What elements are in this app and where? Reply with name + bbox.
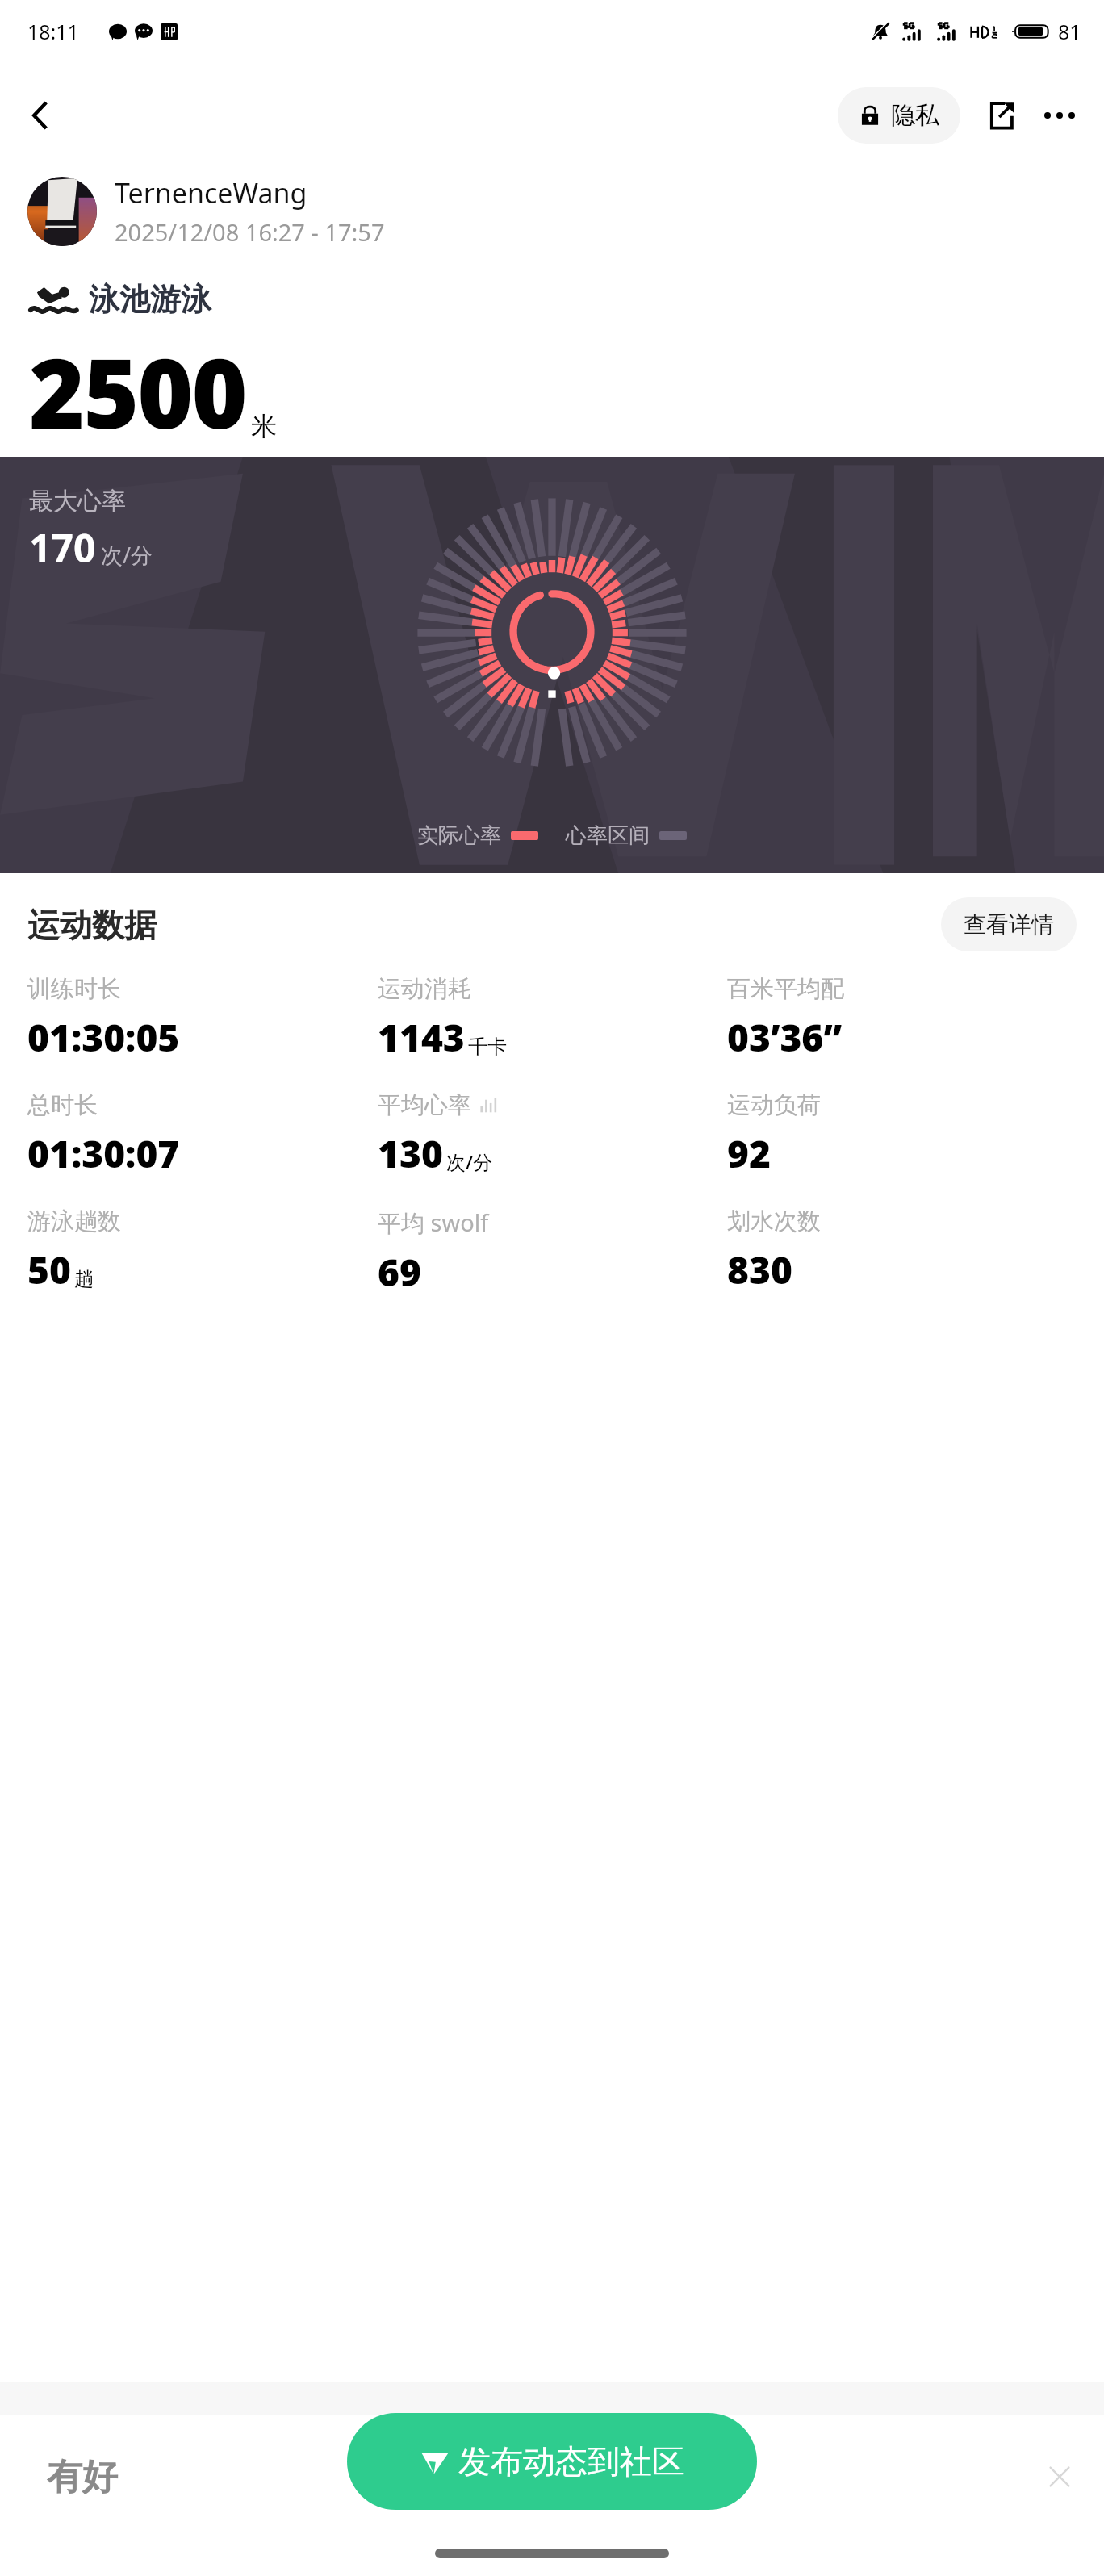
staticText: 2025/12/08 16:27 - 17:57	[115, 216, 385, 248]
staticText: 2500	[29, 327, 246, 457]
staticText: 趟	[74, 1267, 94, 1291]
staticText: 92	[727, 1128, 771, 1179]
staticText: 130	[378, 1128, 443, 1179]
staticText: 运动数据	[27, 905, 157, 945]
staticText: 81	[1058, 18, 1081, 45]
staticText: 50	[27, 1244, 71, 1295]
button[interactable]: 发布动态到社区	[347, 2413, 757, 2510]
staticText: 69	[378, 1247, 421, 1298]
staticText: 划水次数	[727, 1206, 821, 1236]
staticText: 最大心率	[29, 486, 126, 516]
staticText: 隐私	[891, 100, 939, 131]
staticText: 查看详情	[964, 910, 1054, 939]
staticText: 训练时长	[27, 974, 121, 1004]
staticText: 03’36”	[727, 1012, 843, 1063]
staticText: 1143	[378, 1012, 465, 1063]
staticText: TernenceWang	[115, 174, 307, 211]
button[interactable]: Back	[11, 86, 69, 144]
staticText: 平均心率	[378, 1090, 471, 1120]
staticText: 游泳趟数	[27, 1206, 121, 1236]
staticText: 平均 swolf	[378, 1206, 489, 1239]
staticText: 百米平均配	[727, 974, 844, 1004]
staticText: 次/分	[101, 540, 153, 570]
staticText: 次/分	[446, 1148, 493, 1175]
staticText: 泳池游泳	[89, 280, 211, 319]
staticText: 18:11	[27, 18, 79, 45]
button[interactable]: Close	[1033, 2450, 1086, 2503]
button[interactable]: TernenceWang	[27, 174, 1104, 248]
staticText: 发布动态到社区	[458, 2441, 684, 2482]
staticText: 千卡	[468, 1035, 507, 1059]
button[interactable]: 查看详情	[941, 897, 1077, 951]
staticText: 01:30:05	[27, 1012, 180, 1063]
staticText: 米	[251, 410, 277, 442]
staticText: 实际心率	[417, 822, 501, 849]
staticText: 运动负荷	[727, 1090, 821, 1120]
staticText: 心率区间	[566, 822, 650, 849]
staticText: 运动消耗	[378, 974, 471, 1004]
staticText: 有好	[47, 2455, 118, 2499]
staticText: 830	[727, 1244, 792, 1295]
staticText: 170	[29, 521, 96, 574]
button[interactable]: Share	[975, 89, 1028, 142]
staticText: 01:30:07	[27, 1128, 180, 1179]
button[interactable]: 隐私	[838, 87, 960, 144]
button[interactable]: More options	[1033, 89, 1086, 142]
staticText: 总时长	[27, 1090, 98, 1120]
